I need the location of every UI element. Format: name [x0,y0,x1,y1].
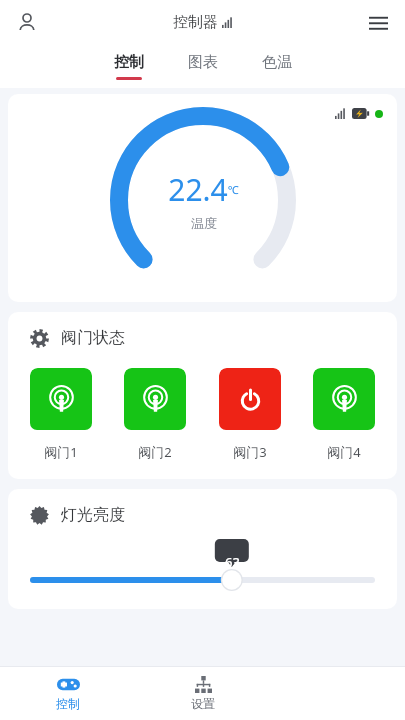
staticText: 63 [225,553,240,571]
button[interactable]: 阀门3 [219,368,281,461]
button[interactable]: 图表 [166,44,240,88]
button[interactable]: 设置 [135,667,270,720]
staticText: 阀门1 [44,443,78,461]
button[interactable]: 阀门4 [313,368,375,461]
staticText: ℃ [228,182,239,197]
staticText: 阀门3 [233,443,267,461]
staticText: 控制 [56,696,80,711]
staticText: 22.4 [168,169,228,210]
button[interactable]: 63 [30,539,375,591]
button[interactable]: 阀门1 [30,368,92,461]
staticText: 控制 [114,53,144,72]
staticText: 色温 [262,53,292,72]
button[interactable]: Menu [361,5,395,39]
button[interactable]: 控制 [0,667,135,720]
staticText: 阀门2 [138,443,172,461]
staticText: 阀门4 [327,443,361,461]
button[interactable]: 色温 [240,44,314,88]
staticText: 灯光亮度 [61,505,125,525]
staticText: 控制器 [173,13,218,32]
button[interactable]: 阀门2 [124,368,186,461]
staticText: 图表 [188,53,218,72]
button[interactable]: Profile [10,5,44,39]
staticText: 阀门状态 [61,328,125,348]
button[interactable]: 控制 [92,44,166,88]
staticText: 温度 [191,215,217,231]
staticText: 设置 [191,696,215,711]
